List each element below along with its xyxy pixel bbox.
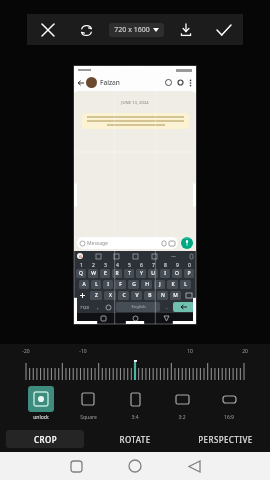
- staticText: M: [173, 292, 178, 299]
- staticText: 1: [80, 262, 83, 267]
- staticText: PERSPECTIVE: [198, 434, 253, 445]
- staticText: -10: [79, 348, 87, 355]
- button[interactable]: 3:2: [167, 386, 197, 421]
- staticText: I: [107, 281, 109, 288]
- staticText: O: [175, 270, 179, 277]
- staticText: 3:2: [178, 414, 186, 421]
- staticText: 4: [116, 262, 119, 267]
- button[interactable]: Square: [73, 386, 103, 421]
- staticText: 20: [242, 348, 248, 355]
- button[interactable]: 720 x 1600: [109, 23, 164, 37]
- staticText: J: [159, 281, 161, 288]
- button[interactable]: ROTATE: [96, 430, 174, 448]
- staticText: 0: [188, 262, 191, 267]
- staticText: R: [115, 270, 119, 277]
- staticText: 10: [187, 348, 193, 355]
- staticText: CROP: [34, 434, 57, 445]
- button[interactable]: 3:4: [120, 386, 150, 421]
- staticText: E: [104, 270, 107, 277]
- staticText: -20: [22, 348, 30, 355]
- staticText: 2: [92, 262, 95, 267]
- staticText: .: [166, 304, 168, 311]
- staticText: Y: [140, 270, 143, 277]
- button[interactable]: 16:9: [214, 386, 244, 421]
- staticText: 3:4: [131, 414, 139, 421]
- button[interactable]: [0, 360, 270, 380]
- button[interactable]: CROP: [6, 430, 84, 448]
- staticText: •••: [171, 254, 176, 259]
- staticText: P: [187, 270, 191, 277]
- staticText: C: [122, 292, 126, 299]
- staticText: 8: [164, 262, 167, 267]
- staticText: B: [148, 292, 152, 299]
- staticText: 720 x 1600: [114, 25, 150, 35]
- staticText: Q: [79, 270, 83, 277]
- staticText: X: [109, 292, 112, 299]
- staticText: Square: [80, 414, 97, 421]
- button[interactable]: Back: [181, 453, 207, 479]
- staticText: L: [184, 281, 187, 288]
- staticText: 16:9: [224, 414, 234, 421]
- staticText: N: [161, 292, 165, 299]
- staticText: U: [151, 270, 155, 277]
- staticText: unlock: [33, 414, 49, 421]
- button[interactable]: Home: [122, 453, 148, 479]
- button[interactable]: Done: [209, 15, 239, 45]
- staticText: ?123: [80, 305, 89, 310]
- button[interactable]: PERSPECTIVE: [186, 430, 264, 448]
- staticText: ROTATE: [119, 434, 151, 445]
- staticText: JUNE 13, 2024: [121, 100, 149, 106]
- staticText: W: [91, 270, 96, 277]
- staticText: F: [119, 281, 122, 288]
- staticText: 9: [176, 262, 179, 267]
- staticText: A: [82, 281, 86, 288]
- staticText: ,: [97, 304, 99, 311]
- button[interactable]: unlock: [26, 386, 56, 421]
- staticText: 3: [104, 262, 107, 267]
- staticText: Faizan: [100, 78, 120, 87]
- button[interactable]: Recents: [63, 453, 89, 479]
- button[interactable]: Save: [172, 16, 200, 44]
- staticText: English: [131, 304, 146, 310]
- staticText: L: [95, 281, 98, 288]
- staticText: V: [135, 292, 139, 299]
- staticText: H: [145, 281, 149, 288]
- staticText: 7: [152, 262, 155, 267]
- staticText: K: [171, 281, 175, 288]
- staticText: I: [164, 270, 166, 277]
- staticText: G: [132, 281, 136, 288]
- staticText: 5: [128, 262, 131, 267]
- button[interactable]: Close: [33, 15, 63, 45]
- staticText: 6: [140, 262, 143, 267]
- staticText: Z: [95, 292, 98, 299]
- staticText: T: [128, 270, 131, 277]
- staticText: G: [79, 254, 82, 259]
- button[interactable]: Reset: [71, 15, 101, 45]
- staticText: Message: [87, 240, 108, 247]
